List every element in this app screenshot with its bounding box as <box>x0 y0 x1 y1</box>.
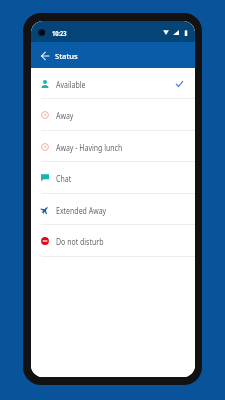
button[interactable]: Do not disturb <box>31 225 195 256</box>
staticText: Status <box>55 51 78 61</box>
staticText: Away - Having lunch <box>56 141 123 154</box>
staticText: Chat <box>56 172 71 185</box>
staticText: Do not disturb <box>56 235 104 248</box>
button[interactable]: Back <box>31 42 195 68</box>
button[interactable]: Away <box>31 99 195 130</box>
button[interactable]: Extended Away <box>31 194 195 225</box>
staticText: Extended Away <box>56 204 107 217</box>
staticText: Away <box>56 109 74 122</box>
staticText: Available <box>56 78 86 91</box>
button[interactable]: Back <box>39 50 51 62</box>
button[interactable]: Chat <box>31 162 195 193</box>
button[interactable]: Away - Having lunch <box>31 131 195 162</box>
staticText: 10:23 <box>52 29 67 37</box>
button[interactable]: Available <box>31 68 195 99</box>
